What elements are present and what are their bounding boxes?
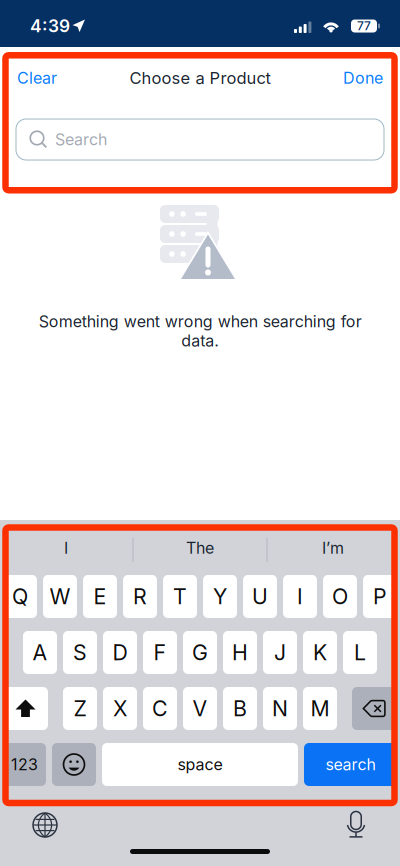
button[interactable]: Q xyxy=(3,575,37,618)
button[interactable]: Z xyxy=(63,687,97,730)
staticText: P xyxy=(373,584,387,609)
staticText: K xyxy=(313,640,327,665)
staticText: N xyxy=(272,696,288,721)
staticText: 77 xyxy=(357,19,371,33)
button[interactable]: M xyxy=(303,687,337,730)
staticText: O xyxy=(332,584,348,609)
staticText: L xyxy=(354,640,366,665)
button[interactable]: J xyxy=(263,631,297,674)
button[interactable]: Emoji xyxy=(52,743,96,786)
staticText: Done xyxy=(343,68,383,88)
button[interactable]: T xyxy=(163,575,197,618)
staticText: F xyxy=(153,640,166,665)
staticText: B xyxy=(233,696,247,721)
staticText: W xyxy=(49,584,70,609)
button[interactable]: O xyxy=(323,575,357,618)
button[interactable]: X xyxy=(103,687,137,730)
staticText: A xyxy=(32,640,47,665)
button[interactable]: I xyxy=(1,527,131,569)
staticText: Z xyxy=(73,696,86,721)
button[interactable]: Dictate xyxy=(343,810,369,837)
button[interactable]: K xyxy=(303,631,337,674)
staticText: search xyxy=(325,755,375,774)
button[interactable]: F xyxy=(143,631,177,674)
button[interactable]: Clear xyxy=(17,61,83,95)
staticText: J xyxy=(274,640,286,665)
staticText: 4:39 xyxy=(30,15,70,36)
button[interactable]: Switch keyboard xyxy=(31,811,59,839)
button[interactable]: B xyxy=(223,687,257,730)
staticText: Clear xyxy=(17,68,57,88)
button[interactable]: U xyxy=(243,575,277,618)
staticText: I xyxy=(297,584,303,609)
staticText: I’m xyxy=(322,538,344,558)
staticText: C xyxy=(152,696,168,721)
button[interactable]: Search xyxy=(16,119,384,160)
button[interactable]: Shift xyxy=(3,687,48,730)
button[interactable]: search xyxy=(304,743,397,786)
button[interactable]: I’m xyxy=(268,527,398,569)
button[interactable]: R xyxy=(123,575,157,618)
button[interactable]: N xyxy=(263,687,297,730)
staticText: space xyxy=(177,755,222,774)
button[interactable]: P xyxy=(363,575,397,618)
staticText: D xyxy=(112,640,127,665)
staticText: I xyxy=(64,538,68,558)
staticText: T xyxy=(173,584,187,609)
button[interactable]: W xyxy=(43,575,77,618)
staticText: Y xyxy=(213,584,227,609)
button[interactable]: space xyxy=(102,743,298,786)
staticText: M xyxy=(310,696,329,721)
button[interactable]: D xyxy=(103,631,137,674)
button[interactable]: C xyxy=(143,687,177,730)
button[interactable]: L xyxy=(343,631,377,674)
button[interactable]: I xyxy=(283,575,317,618)
button[interactable]: E xyxy=(83,575,117,618)
staticText: 123 xyxy=(11,755,38,774)
staticText: Q xyxy=(12,584,28,609)
staticText: S xyxy=(73,640,87,665)
staticText: U xyxy=(252,584,268,609)
staticText: The xyxy=(186,538,214,558)
button[interactable]: V xyxy=(183,687,217,730)
button[interactable]: A xyxy=(23,631,57,674)
staticText: Something went wrong when searching for … xyxy=(38,312,361,350)
button[interactable]: G xyxy=(183,631,217,674)
staticText: Search xyxy=(55,130,107,149)
button[interactable]: S xyxy=(63,631,97,674)
staticText: H xyxy=(232,640,248,665)
staticText: G xyxy=(192,640,208,665)
button[interactable]: Delete xyxy=(352,687,397,730)
staticText: V xyxy=(192,696,207,721)
button[interactable]: The xyxy=(135,527,265,569)
button[interactable]: 123 xyxy=(3,743,46,786)
staticText: X xyxy=(113,696,127,721)
button[interactable]: Done xyxy=(323,61,383,95)
button[interactable]: H xyxy=(223,631,257,674)
staticText: E xyxy=(93,584,106,609)
button[interactable]: Y xyxy=(203,575,237,618)
staticText: Choose a Product xyxy=(129,68,270,88)
staticText: R xyxy=(133,584,147,609)
